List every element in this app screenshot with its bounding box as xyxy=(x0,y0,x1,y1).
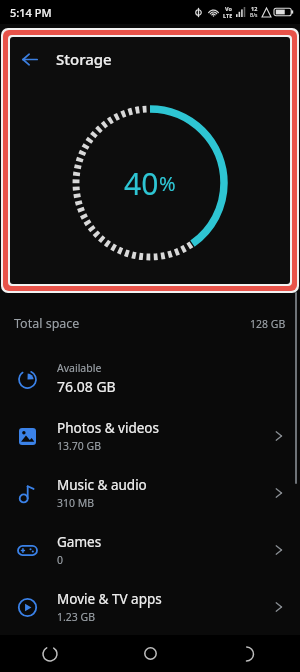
staticText: Photos & videos xyxy=(57,419,159,437)
button[interactable]: Movie & TV apps xyxy=(0,578,300,635)
staticText: 12 xyxy=(251,5,258,12)
staticText: Movie & TV apps xyxy=(57,590,162,608)
staticText: 76.08 GB xyxy=(57,377,116,396)
button[interactable]: Music & audio xyxy=(0,464,300,521)
button[interactable]: Home xyxy=(100,635,200,672)
staticText: 310 MB xyxy=(57,496,95,510)
staticText: 5:14 PM xyxy=(10,5,52,20)
button[interactable]: Back xyxy=(200,635,300,672)
staticText: Games xyxy=(57,533,102,551)
button[interactable]: Photos & videos xyxy=(0,407,300,464)
staticText: Music & audio xyxy=(57,476,147,494)
staticText: Vo xyxy=(225,5,232,12)
button[interactable]: Back xyxy=(10,40,48,78)
staticText: 1.23 GB xyxy=(57,610,96,624)
staticText: Available xyxy=(57,361,102,375)
staticText: Total space xyxy=(14,315,80,332)
staticText: Storage xyxy=(56,49,112,69)
staticText: 128 GB xyxy=(250,317,286,331)
staticText: 13.70 GB xyxy=(57,439,102,453)
button[interactable]: Recents xyxy=(0,635,100,672)
button[interactable]: Games xyxy=(0,521,300,578)
staticText: 40 xyxy=(124,163,159,204)
staticText: LTE xyxy=(223,12,233,19)
button[interactable]: Available xyxy=(0,350,300,407)
staticText: B/s xyxy=(250,12,258,19)
staticText: % xyxy=(159,170,176,197)
staticText: 0 xyxy=(57,553,64,567)
